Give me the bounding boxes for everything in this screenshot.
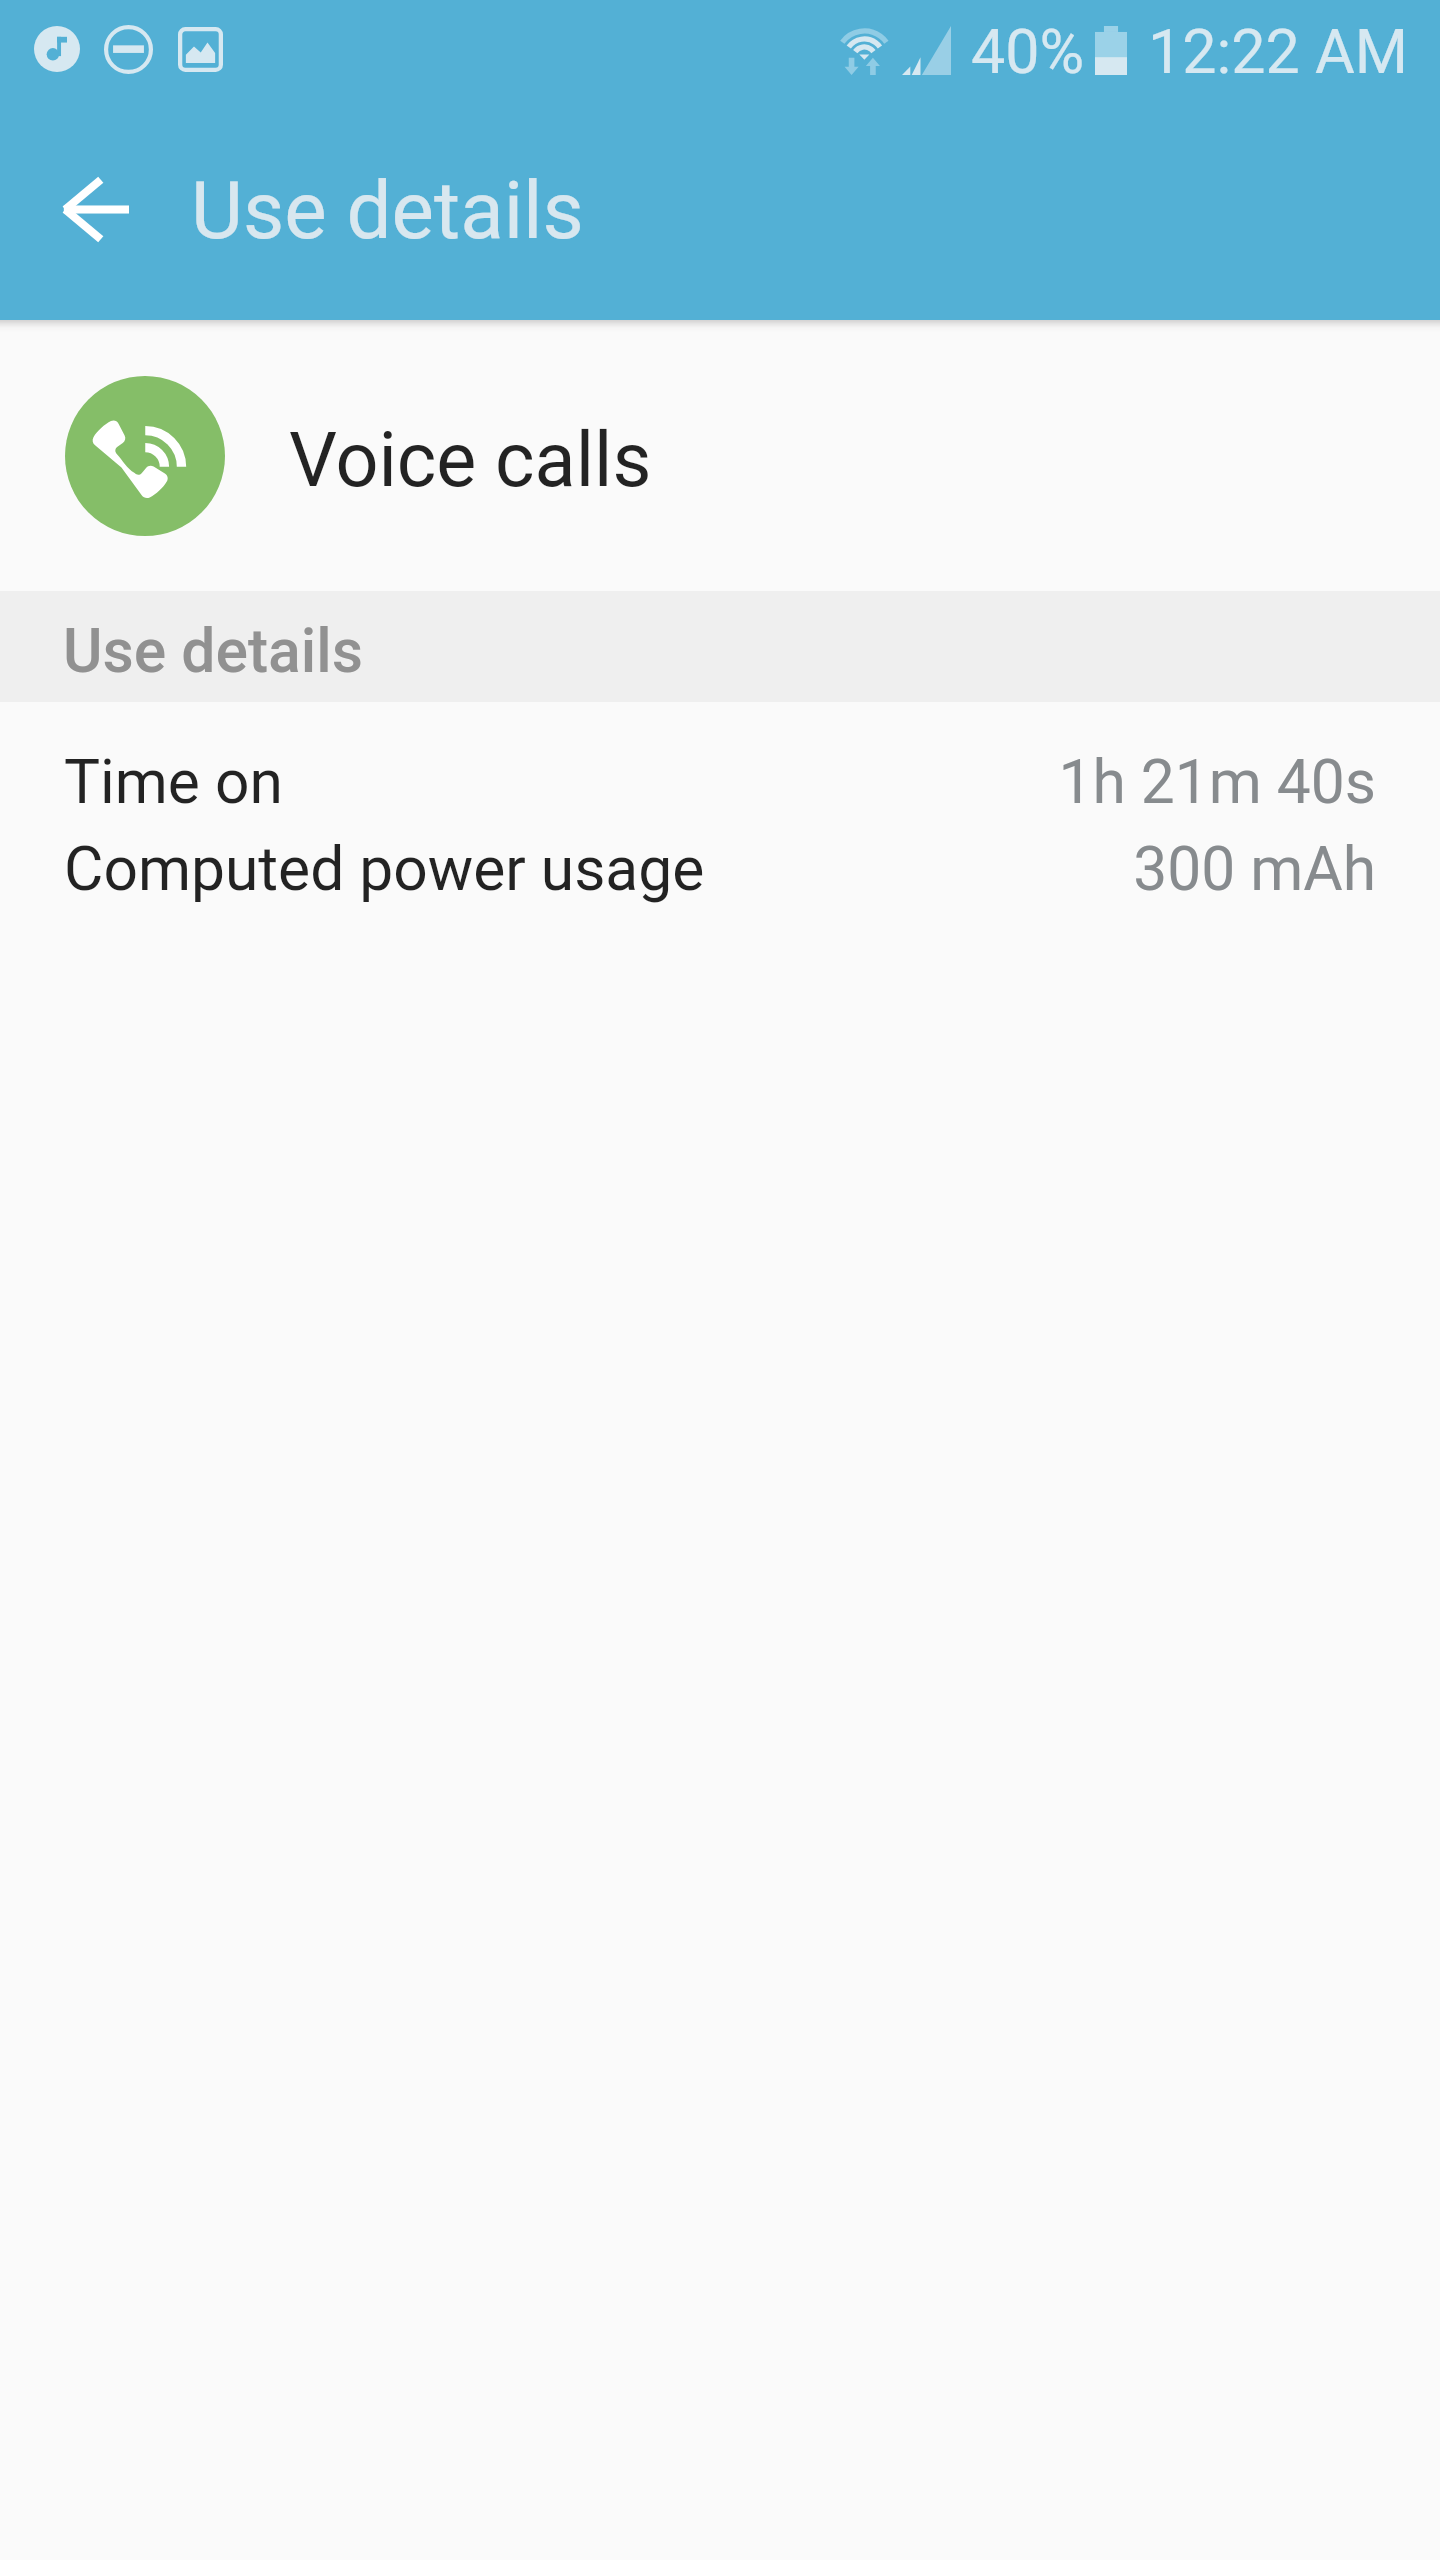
button[interactable]: Time on	[0, 739, 1440, 826]
staticText: Use details	[63, 616, 364, 687]
staticText: Time on	[64, 747, 283, 818]
staticText: Use details	[191, 164, 584, 258]
button[interactable]: Back	[32, 151, 160, 279]
staticText: 1h 21m 40s	[1058, 747, 1376, 818]
staticText: Computed power usage	[64, 834, 705, 905]
button[interactable]: Computed power usage	[0, 826, 1440, 913]
staticText: Voice calls	[289, 416, 652, 504]
staticText: 12:22 AM	[1148, 16, 1409, 87]
button[interactable]: Voice calls	[0, 320, 1440, 591]
staticText: 300 mAh	[1133, 834, 1376, 905]
staticText: 40%	[971, 16, 1085, 87]
